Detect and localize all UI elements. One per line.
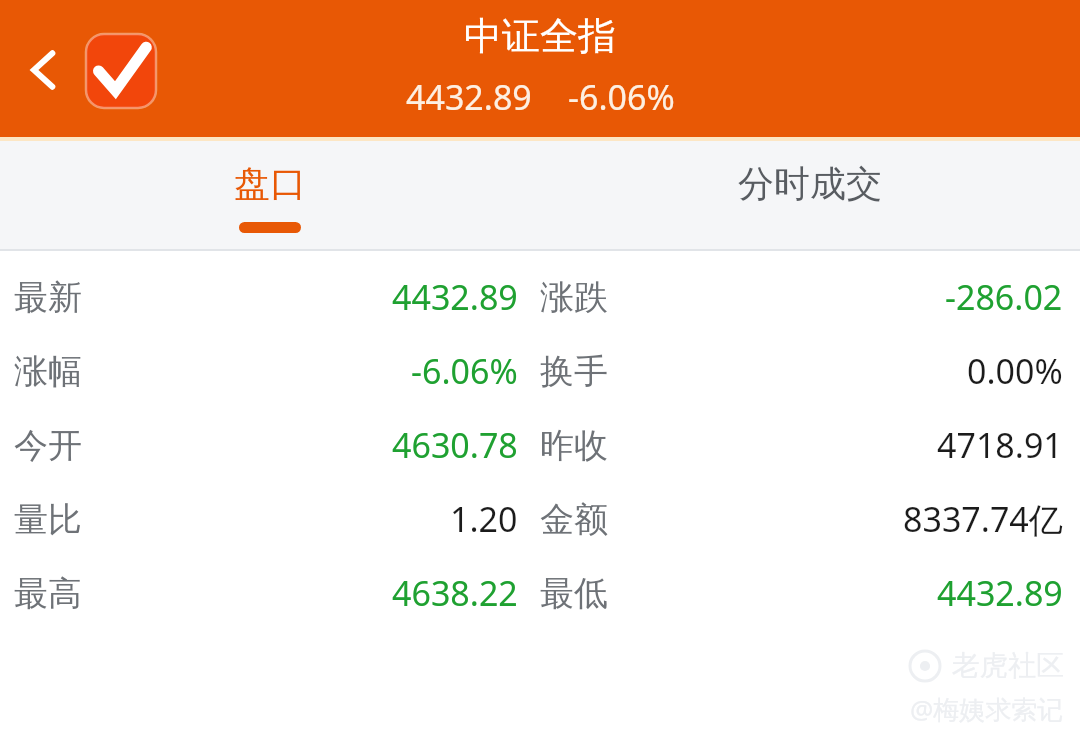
staticText: -6.06%: [411, 348, 518, 394]
button[interactable]: 盘口: [0, 141, 540, 251]
staticText: 涨跌: [540, 276, 608, 319]
button[interactable]: Back: [6, 32, 82, 108]
staticText: 最高: [14, 572, 82, 615]
staticText: 最新: [14, 276, 82, 319]
button[interactable]: 涨幅: [0, 334, 1080, 408]
staticText: 分时成交: [738, 161, 882, 206]
staticText: 1.20: [450, 496, 518, 542]
staticText: 0.00%: [967, 348, 1063, 394]
staticText: 8337.74亿: [903, 496, 1063, 542]
staticText: 4432.89: [406, 74, 532, 120]
button[interactable]: 最新: [0, 260, 1080, 334]
button[interactable]: Added to watchlist: [86, 34, 156, 108]
staticText: @梅姨求索记: [910, 691, 1064, 727]
staticText: 昨收: [540, 424, 608, 467]
staticText: 盘口: [234, 161, 306, 206]
staticText: -6.06%: [568, 74, 675, 120]
button[interactable]: 今开: [0, 408, 1080, 482]
button[interactable]: 分时成交: [540, 141, 1080, 251]
staticText: 金额: [540, 498, 608, 541]
staticText: -286.02: [945, 274, 1063, 320]
staticText: 量比: [14, 498, 82, 541]
staticText: 换手: [540, 350, 608, 393]
staticText: 涨幅: [14, 350, 82, 393]
button[interactable]: 最高: [0, 556, 1080, 630]
staticText: 4432.89: [392, 274, 518, 320]
staticText: 4718.91: [937, 422, 1063, 468]
button[interactable]: 量比: [0, 482, 1080, 556]
staticText: 老虎社区: [952, 648, 1064, 683]
staticText: 今开: [14, 424, 82, 467]
staticText: 4432.89: [937, 570, 1063, 616]
staticText: 中证全指: [464, 12, 616, 60]
staticText: 4630.78: [392, 422, 518, 468]
staticText: 4638.22: [392, 570, 518, 616]
staticText: 最低: [540, 572, 608, 615]
